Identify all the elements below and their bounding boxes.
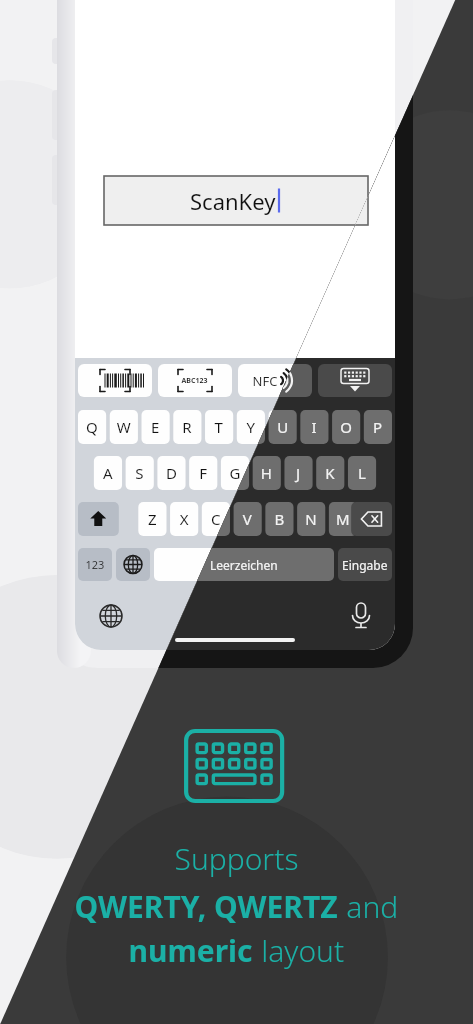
button[interactable]: ScanKey keyboard promo	[0, 0, 473, 1024]
other: ScanKey keyboard promo	[0, 0, 473, 1024]
